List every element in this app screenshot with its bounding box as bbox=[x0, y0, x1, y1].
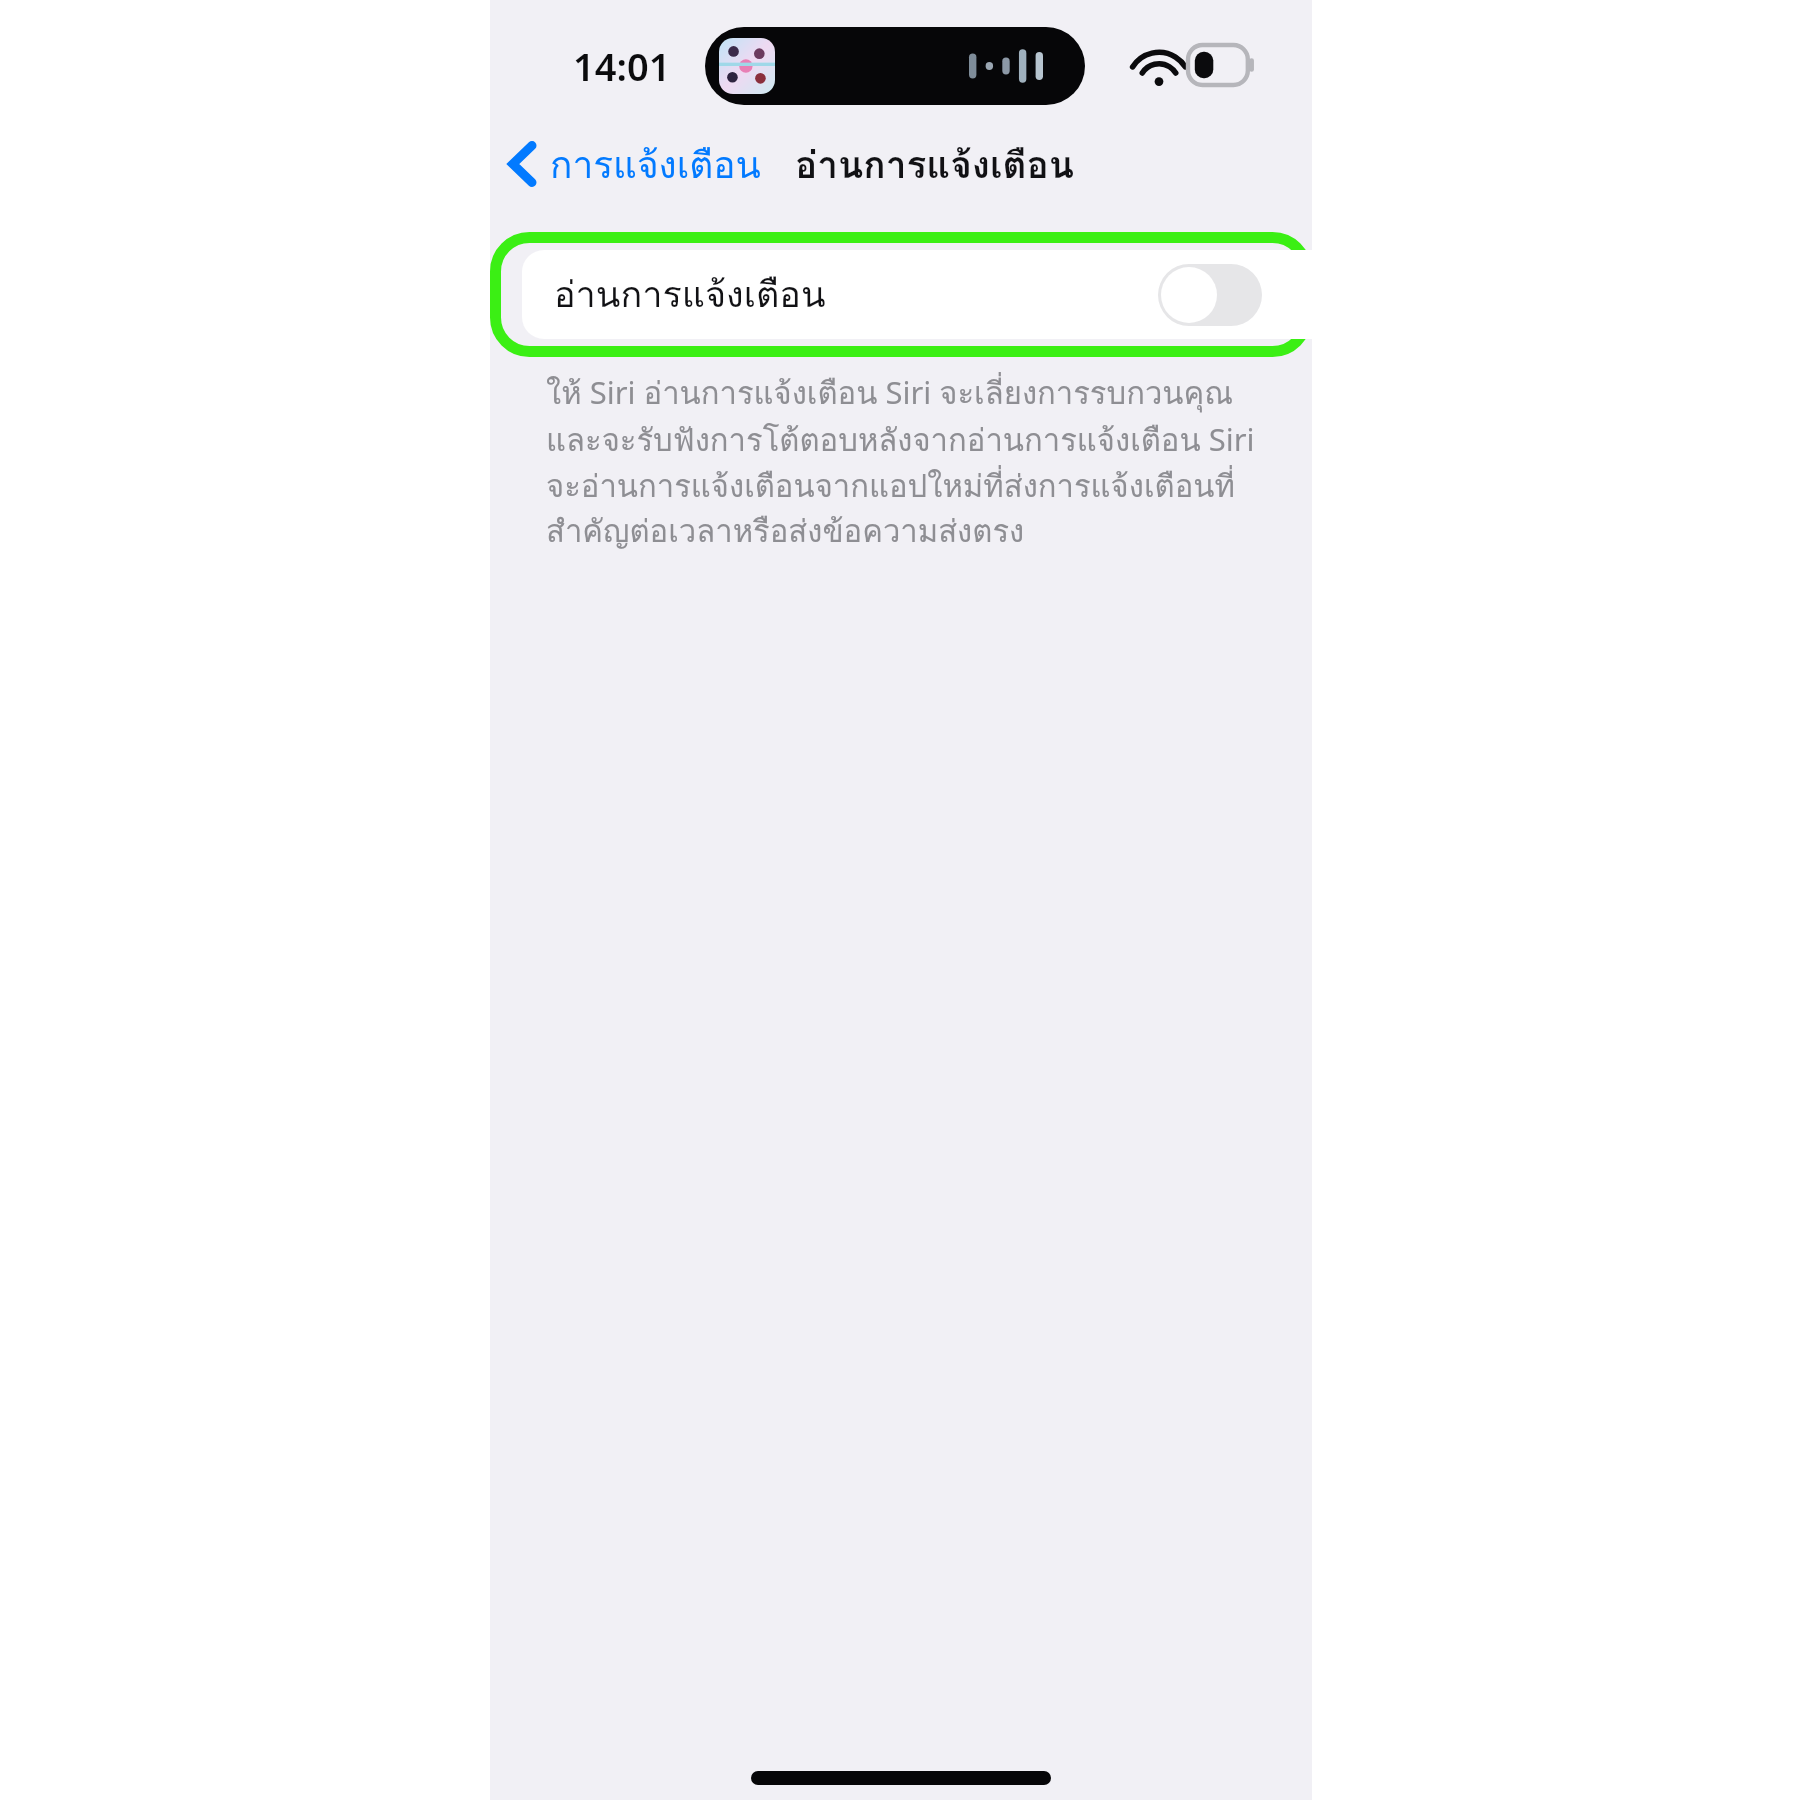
staticText: ให้ Siri อ่านการแจ้งเตือน Siri จะเลี่ยงก… bbox=[546, 368, 1256, 555]
staticText: อ่านการแจ้งเตือน bbox=[795, 135, 1075, 194]
button[interactable]: Back bbox=[508, 132, 761, 196]
button[interactable]: Announce Notifications toggle, off bbox=[1158, 264, 1262, 326]
staticText: อ่านการแจ้งเตือน bbox=[554, 266, 826, 323]
other: Wi-Fi bbox=[1135, 47, 1183, 85]
staticText: การแจ้งเตือน bbox=[550, 135, 761, 194]
other: Back bbox=[508, 141, 538, 187]
button[interactable]: อ่านการแจ้งเตือน bbox=[522, 250, 1312, 339]
staticText: 14:01 bbox=[573, 40, 671, 92]
